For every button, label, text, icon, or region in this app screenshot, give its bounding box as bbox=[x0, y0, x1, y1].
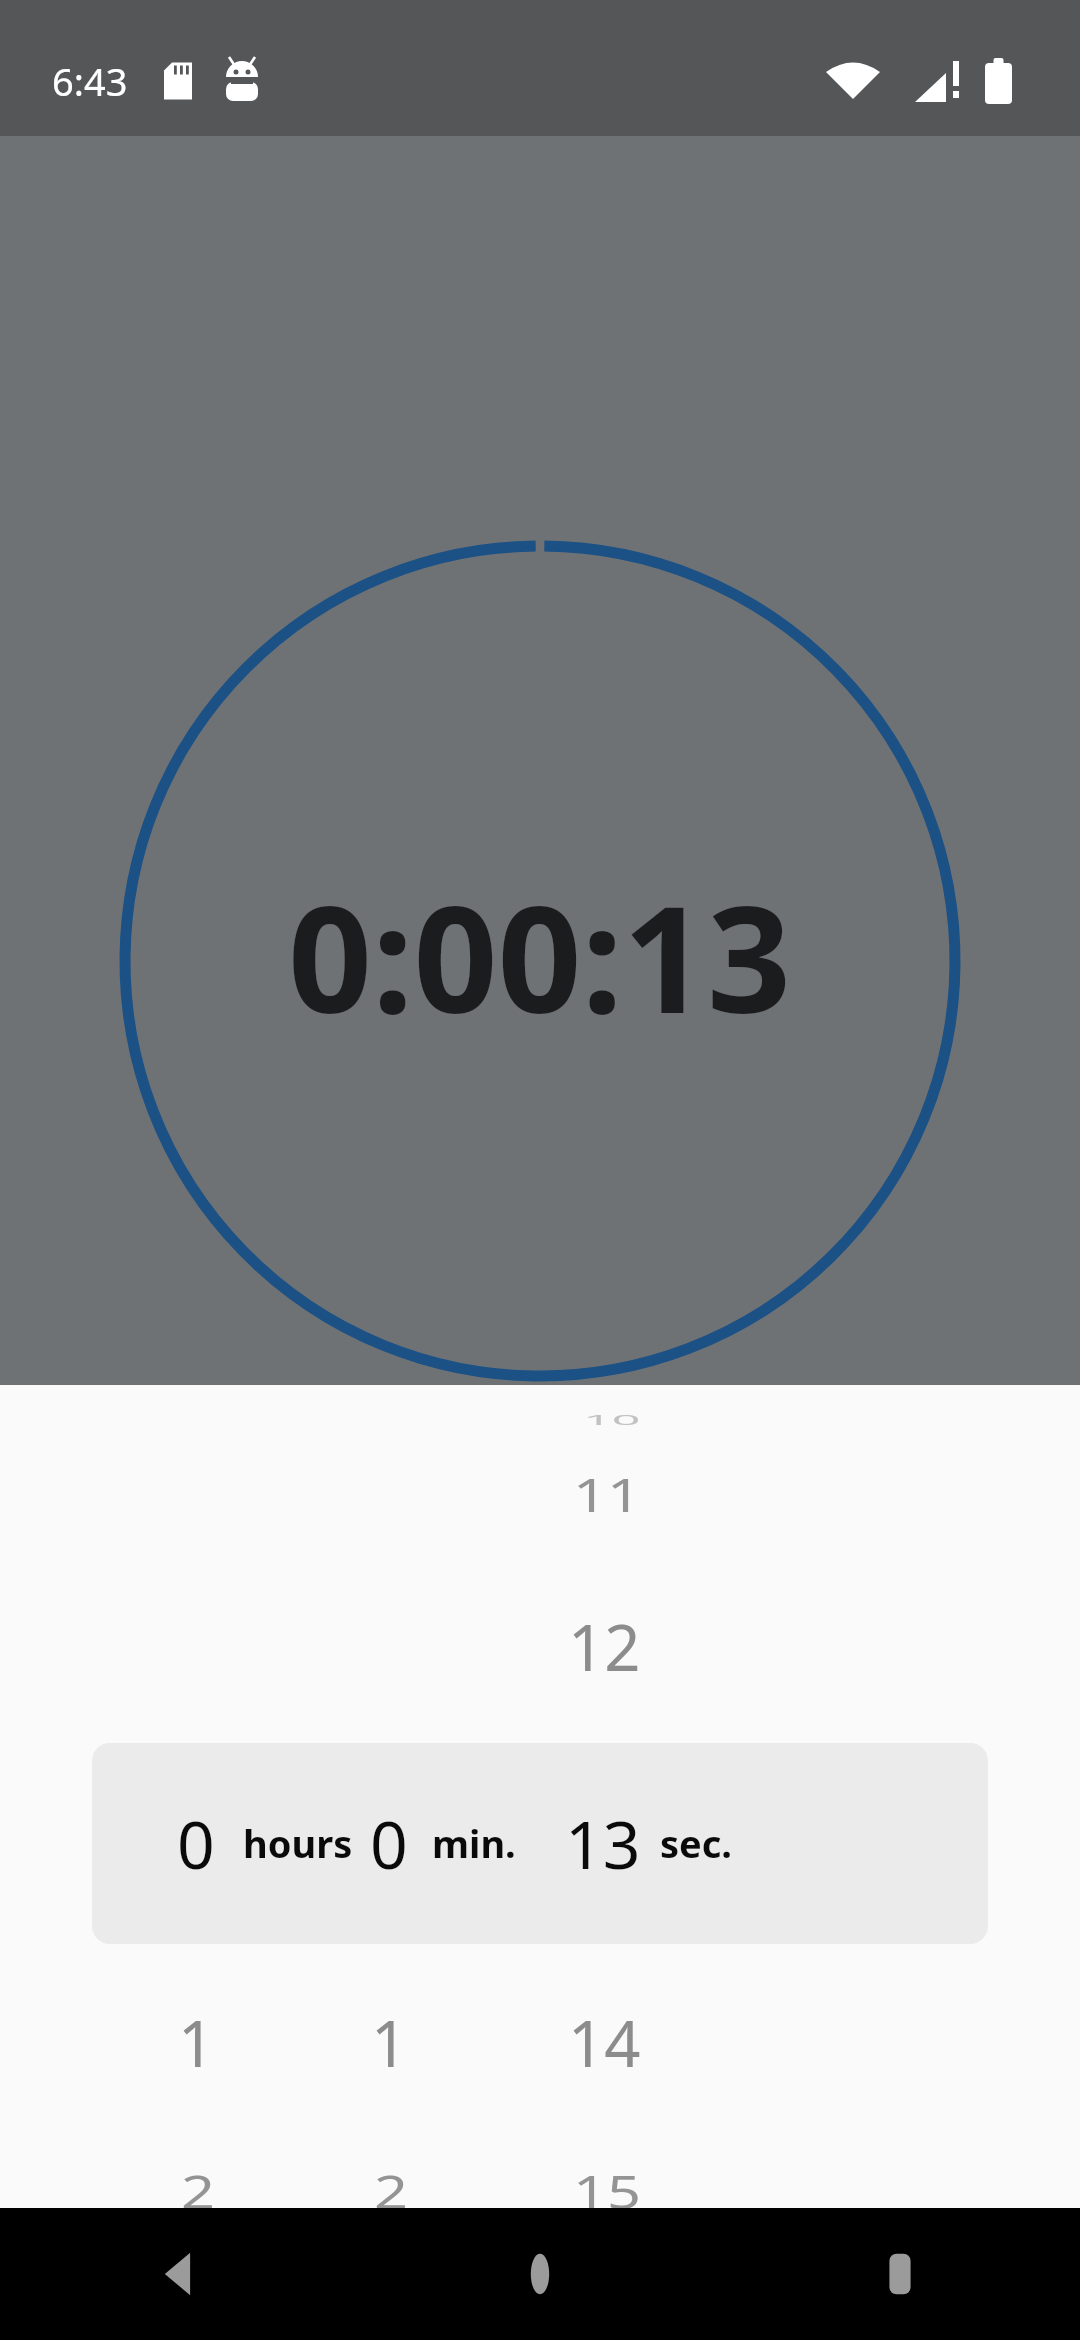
staticText: 2 bbox=[181, 2160, 215, 2223]
button[interactable]: Back bbox=[0, 2208, 360, 2340]
staticText: 0:00:13 bbox=[288, 856, 792, 1056]
staticText: 12 bbox=[568, 1603, 641, 1689]
button[interactable]: 0 bbox=[0, 1385, 1080, 2208]
staticText: 15 bbox=[573, 2160, 641, 2223]
staticText: 6:43 bbox=[52, 55, 128, 107]
button[interactable]: Recent apps bbox=[720, 2208, 1080, 2340]
staticText: sec. bbox=[660, 1817, 733, 1869]
staticText: 0 bbox=[370, 1798, 408, 1888]
button[interactable]: Home bbox=[360, 2208, 720, 2340]
staticText: 1 bbox=[178, 1999, 215, 2085]
button[interactable]: 0:00:13 bbox=[0, 0, 1080, 1385]
staticText: 2 bbox=[374, 2160, 408, 2223]
staticText: min. bbox=[432, 1817, 516, 1869]
button[interactable]: 10 bbox=[0, 1385, 1080, 2208]
button[interactable]: 0 bbox=[0, 1385, 1080, 2208]
staticText: 1 bbox=[371, 1999, 408, 2085]
staticText: 13 bbox=[565, 1798, 641, 1888]
staticText: 0 bbox=[177, 1798, 215, 1888]
staticText: 11 bbox=[573, 1463, 641, 1526]
staticText: hours bbox=[243, 1817, 353, 1869]
staticText: 14 bbox=[568, 1999, 641, 2085]
staticText: 10 bbox=[583, 1409, 641, 1429]
staticText: 3 bbox=[186, 2258, 215, 2278]
